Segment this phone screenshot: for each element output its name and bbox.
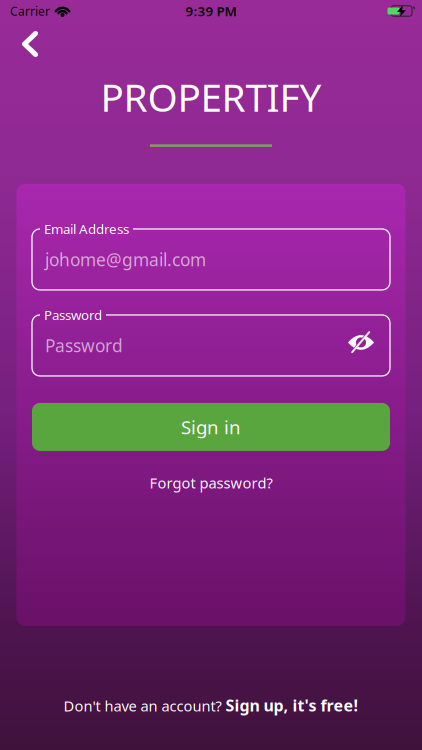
staticText: Password: [44, 306, 102, 324]
button[interactable]: Don't have an account? Sign up, it's fre…: [63, 695, 358, 716]
button[interactable]: [22, 31, 38, 57]
button[interactable]: [32, 315, 390, 376]
staticText: Forgot password?: [149, 473, 272, 492]
staticText: Password: [45, 334, 123, 357]
button[interactable]: Sign in: [32, 403, 390, 451]
button[interactable]: [32, 229, 390, 290]
staticText: Carrier: [10, 3, 50, 19]
staticText: Sign in: [181, 415, 241, 439]
staticText: johome@gmail.com: [45, 248, 206, 271]
button[interactable]: [348, 332, 374, 353]
staticText: Don't have an account? Sign up, it's fre…: [63, 695, 358, 716]
staticText: PROPERTIFY: [100, 71, 321, 122]
staticText: Email Address: [44, 220, 129, 238]
staticText: 9:39 PM: [185, 2, 236, 20]
button[interactable]: Forgot password?: [149, 473, 272, 492]
